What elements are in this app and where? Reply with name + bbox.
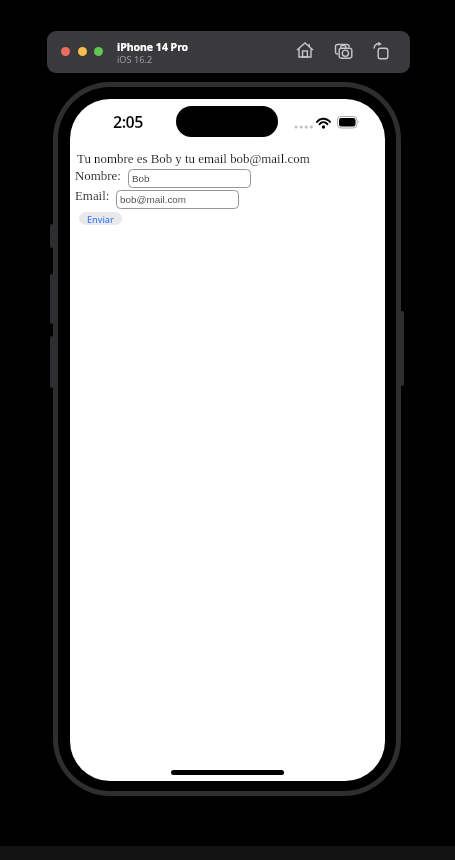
staticText: Tu nombre es Bob y tu email bob@mail.com bbox=[77, 152, 310, 166]
staticText: Bob bbox=[132, 173, 150, 184]
staticText: iPhone 14 Pro bbox=[117, 40, 189, 54]
button[interactable] bbox=[78, 47, 87, 56]
button[interactable] bbox=[294, 40, 316, 62]
button[interactable] bbox=[372, 41, 394, 63]
staticText: Nombre: bbox=[75, 169, 121, 183]
button[interactable]: Bob bbox=[128, 169, 251, 188]
button[interactable] bbox=[61, 47, 70, 56]
staticText: Enviar bbox=[87, 213, 114, 225]
button[interactable] bbox=[332, 40, 356, 64]
button[interactable]: bob@mail.com bbox=[116, 190, 239, 209]
staticText: bob@mail.com bbox=[120, 194, 187, 205]
staticText: Email: bbox=[75, 189, 110, 203]
staticText: 2:05 bbox=[113, 111, 143, 133]
staticText: iOS 16.2 bbox=[117, 53, 153, 66]
button[interactable] bbox=[94, 47, 103, 56]
button[interactable]: Enviar bbox=[79, 212, 122, 225]
